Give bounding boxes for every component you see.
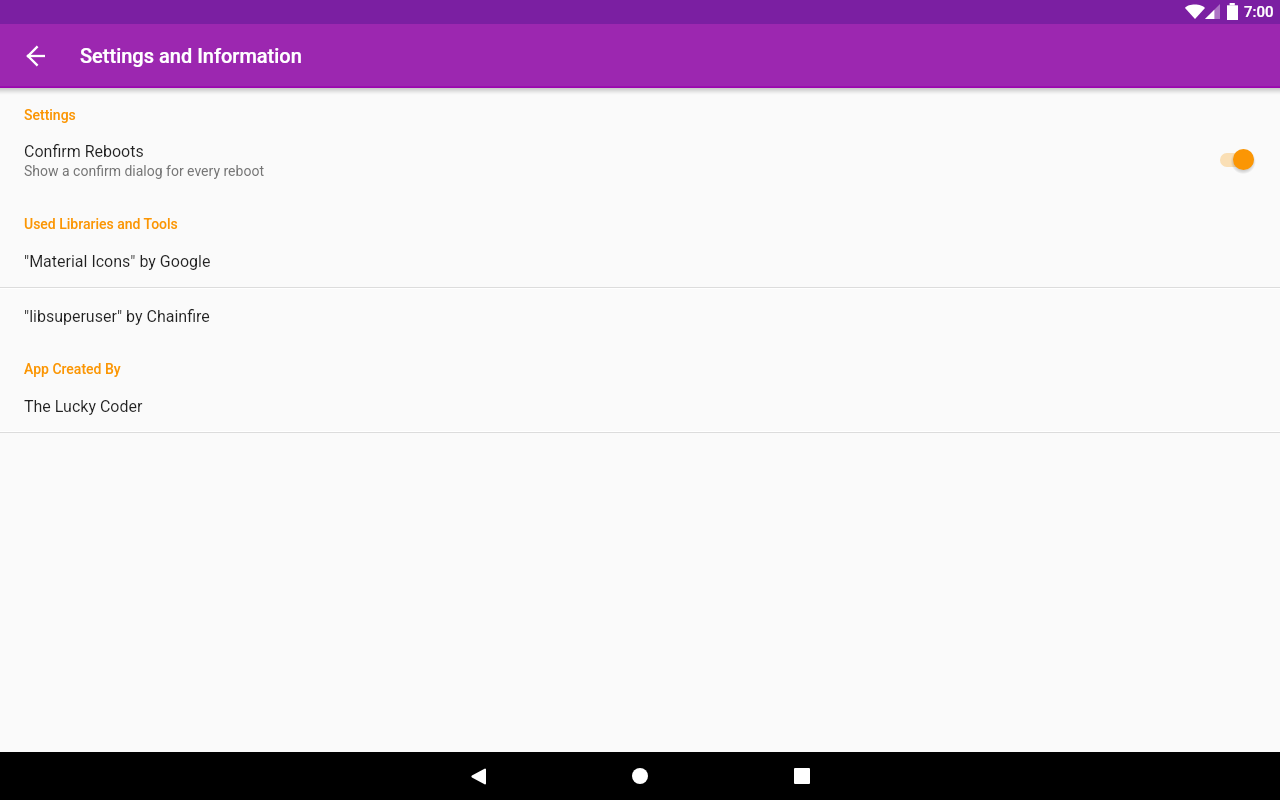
button[interactable]: Home (616, 752, 664, 800)
staticText: Show a confirm dialog for every reboot (24, 163, 264, 179)
button[interactable]: The Lucky Coder (0, 379, 1280, 431)
staticText: Used Libraries and Tools (24, 216, 178, 232)
staticText: Settings (24, 107, 76, 123)
staticText: "Material Icons" by Google (24, 252, 211, 271)
staticText: Settings and Information (80, 44, 302, 67)
staticText: Confirm Reboots (24, 142, 144, 161)
button[interactable]: Navigate up (18, 38, 54, 74)
staticText: 7:00 (1244, 3, 1274, 21)
button[interactable]: Recent apps (778, 752, 826, 800)
button[interactable]: "Material Icons" by Google (0, 234, 1280, 287)
button[interactable]: Back (454, 752, 502, 800)
staticText: "libsuperuser" by Chainfire (24, 307, 210, 326)
button[interactable]: Confirm Reboots (0, 116, 1280, 179)
staticText: The Lucky Coder (24, 397, 143, 416)
button[interactable]: "libsuperuser" by Chainfire (0, 289, 1280, 342)
staticText: App Created By (24, 361, 121, 377)
button[interactable]: Confirm reboots switch (1220, 149, 1254, 171)
